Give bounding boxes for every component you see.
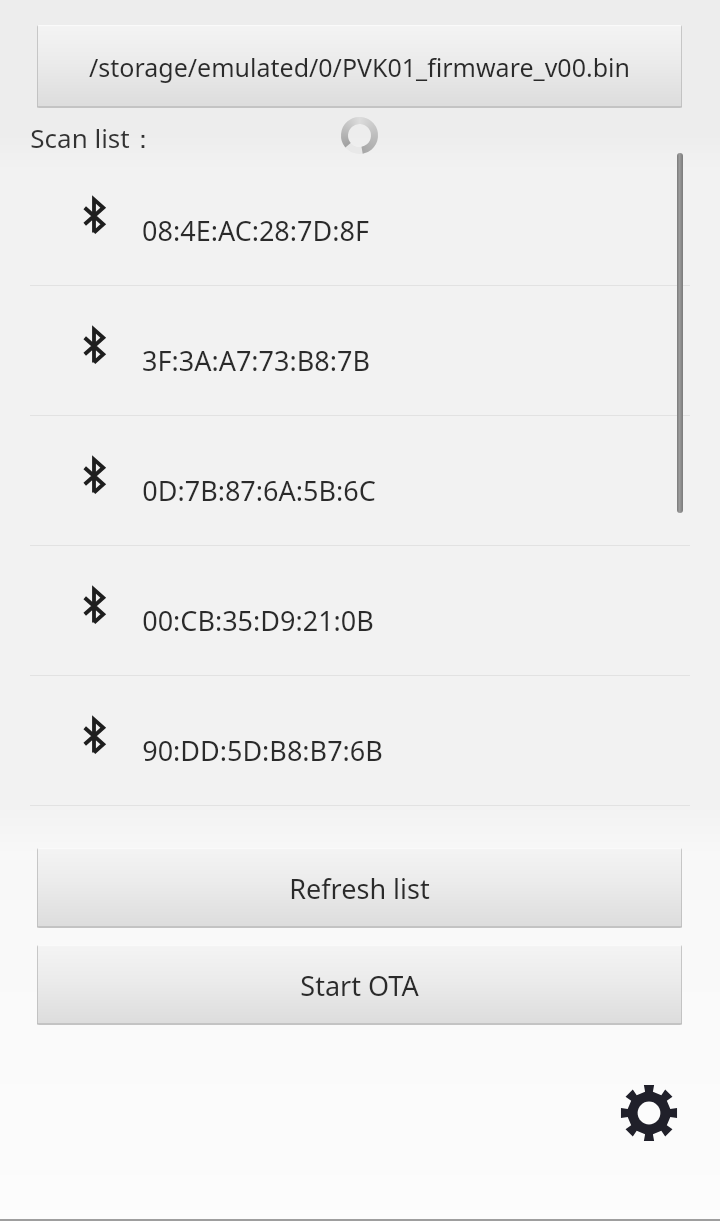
button[interactable]: 0D:7B:87:6A:5B:6C bbox=[0, 415, 720, 545]
staticText: 90:DD:5D:B8:B7:6B bbox=[142, 732, 383, 769]
button[interactable]: Settings bbox=[614, 1078, 684, 1148]
button[interactable]: Start OTA bbox=[37, 945, 682, 1025]
staticText: Start OTA bbox=[300, 967, 419, 1004]
staticText: 00:CB:35:D9:21:0B bbox=[142, 602, 374, 639]
staticText: Scan list： bbox=[30, 120, 156, 156]
button[interactable]: 90:DD:5D:B8:B7:6B bbox=[0, 675, 720, 805]
staticText: 08:4E:AC:28:7D:8F bbox=[142, 212, 369, 249]
staticText: 3F:3A:A7:73:B8:7B bbox=[142, 342, 370, 379]
button[interactable]: 3F:3A:A7:73:B8:7B bbox=[0, 285, 720, 415]
button[interactable]: Refresh list bbox=[37, 848, 682, 928]
button[interactable]: /storage/emulated/0/PVK01_firmware_v00.b… bbox=[37, 25, 682, 108]
staticText: Refresh list bbox=[289, 870, 430, 907]
button[interactable]: 08:4E:AC:28:7D:8F bbox=[0, 155, 720, 285]
staticText: /storage/emulated/0/PVK01_firmware_v00.b… bbox=[89, 50, 630, 84]
button[interactable]: 00:CB:35:D9:21:0B bbox=[0, 545, 720, 675]
staticText: 0D:7B:87:6A:5B:6C bbox=[142, 472, 376, 509]
